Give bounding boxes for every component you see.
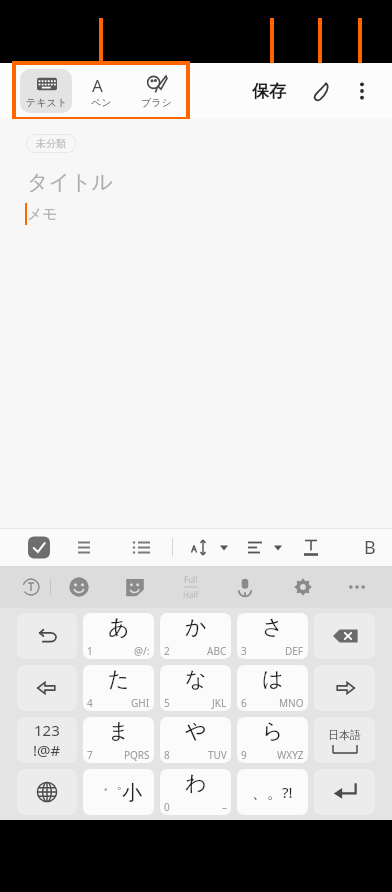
staticText: ら: [262, 718, 284, 744]
staticText: 日本語: [328, 728, 361, 742]
button[interactable]: Switch language: [17, 769, 77, 815]
staticText: タイトル: [27, 169, 113, 195]
staticText: ま: [108, 718, 130, 744]
button[interactable]: ま: [83, 717, 154, 763]
button[interactable]: や: [160, 717, 231, 763]
staticText: @/:: [134, 644, 150, 658]
button[interactable]: Numbered list: [58, 529, 98, 566]
staticText: 4: [87, 696, 93, 710]
button[interactable]: Emoji: [62, 570, 96, 604]
staticText: 未分類: [36, 137, 66, 150]
button[interactable]: さ: [237, 613, 308, 659]
staticText: WXYZ: [277, 748, 304, 762]
staticText: テキスト: [26, 96, 67, 109]
button[interactable]: は: [237, 665, 308, 711]
staticText: 5: [164, 696, 170, 710]
staticText: 2: [164, 644, 170, 658]
button[interactable]: Full width / half width: [174, 570, 208, 604]
staticText: TUV: [208, 748, 227, 762]
button[interactable]: Move cursor right: [314, 665, 375, 711]
button[interactable]: Symbols: [17, 717, 77, 763]
button[interactable]: 保存: [244, 75, 294, 108]
staticText: DEF: [285, 644, 304, 658]
button[interactable]: わ: [160, 769, 231, 815]
staticText: GHI: [131, 696, 150, 710]
button[interactable]: テキスト: [20, 69, 72, 113]
staticText: ゛゜: [95, 785, 122, 801]
staticText: あ: [108, 614, 130, 640]
staticText: JKL: [212, 696, 227, 710]
button[interactable]: あ: [83, 613, 154, 659]
button[interactable]: Aa: [76, 69, 127, 113]
button[interactable]: Modify character: [83, 769, 154, 815]
button[interactable]: Voice input: [228, 570, 262, 604]
button[interactable]: か: [160, 613, 231, 659]
button[interactable]: ブラシ: [131, 69, 182, 113]
staticText: 7: [87, 748, 93, 762]
button[interactable]: Keyboard settings: [286, 570, 320, 604]
staticText: 1: [87, 644, 93, 658]
staticText: メモ: [27, 205, 58, 224]
button[interactable]: Undo: [17, 613, 77, 659]
button[interactable]: な: [160, 665, 231, 711]
staticText: PQRS: [124, 748, 150, 762]
staticText: や: [185, 718, 207, 744]
staticText: 6: [241, 696, 247, 710]
staticText: ABC: [207, 644, 227, 658]
button[interactable]: Punctuation: [237, 769, 308, 815]
staticText: ペン: [91, 96, 112, 109]
staticText: な: [185, 666, 207, 692]
button[interactable]: Move cursor left: [17, 665, 77, 711]
staticText: 8: [164, 748, 170, 762]
staticText: 小: [122, 780, 142, 805]
button[interactable]: た: [83, 665, 154, 711]
staticText: た: [108, 666, 130, 692]
button[interactable]: Underline: [248, 529, 293, 566]
button[interactable]: Alignment: [203, 529, 248, 566]
button[interactable]: ら: [237, 717, 308, 763]
staticText: わ: [185, 770, 207, 796]
staticText: 3: [241, 644, 247, 658]
staticText: は: [262, 666, 284, 692]
button[interactable]: Attach: [302, 71, 342, 111]
button[interactable]: 未分類: [26, 134, 76, 153]
button[interactable]: Font size: [158, 529, 203, 566]
staticText: ブラシ: [141, 96, 172, 109]
staticText: Half: [183, 589, 199, 600]
staticText: 123: [34, 720, 60, 740]
staticText: 9: [241, 748, 247, 762]
staticText: 0: [164, 800, 170, 814]
button[interactable]: Bullet list: [98, 529, 138, 566]
staticText: 保存: [252, 81, 286, 102]
staticText: か: [185, 614, 207, 640]
button[interactable]: Backspace: [314, 613, 375, 659]
staticText: –: [222, 800, 227, 814]
staticText: 、。?!: [252, 782, 293, 802]
button[interactable]: Checklist: [18, 529, 58, 566]
button[interactable]: Space: [314, 717, 375, 763]
button[interactable]: More: [340, 570, 374, 604]
staticText: !@#: [33, 740, 61, 760]
button[interactable]: Input mode: [12, 568, 50, 606]
staticText: MNO: [279, 696, 304, 710]
staticText: Full: [184, 574, 198, 585]
staticText: B: [364, 535, 376, 560]
staticText: Aa: [92, 74, 112, 94]
button[interactable]: Bold: [293, 529, 338, 566]
button[interactable]: Stickers: [118, 570, 152, 604]
button[interactable]: Enter: [314, 769, 375, 815]
staticText: さ: [262, 614, 284, 640]
button[interactable]: More options: [342, 71, 382, 111]
